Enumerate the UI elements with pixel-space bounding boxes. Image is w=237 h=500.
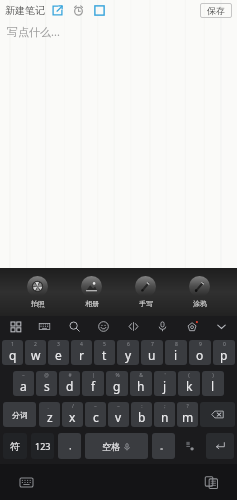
staticText: 3	[57, 341, 60, 348]
staticText: p	[220, 347, 228, 363]
staticText: 新建笔记	[5, 4, 45, 17]
button[interactable]: ~	[85, 402, 106, 427]
staticText: g	[113, 378, 121, 394]
button[interactable]: /	[62, 402, 83, 427]
button[interactable]: :	[131, 402, 152, 427]
button[interactable]: Search	[66, 318, 83, 335]
button[interactable]: Recent apps	[202, 473, 220, 491]
staticText: i	[174, 347, 178, 363]
button[interactable]: Keyboard layout	[36, 318, 53, 335]
button[interactable]: 相册	[75, 274, 108, 310]
button[interactable]: 涂鸦	[183, 274, 216, 310]
button[interactable]: ;	[154, 402, 175, 427]
staticText: 相册	[85, 299, 99, 308]
button[interactable]: 9	[189, 340, 211, 365]
button[interactable]: '	[154, 371, 176, 396]
button[interactable]: 3	[48, 340, 69, 365]
staticText: m	[182, 409, 194, 425]
staticText: 0	[223, 341, 226, 348]
button[interactable]: 5	[94, 340, 115, 365]
staticText: /	[72, 403, 74, 410]
staticText: t	[102, 347, 107, 363]
button[interactable]: ，	[58, 433, 81, 459]
button[interactable]: ~	[108, 402, 129, 427]
button[interactable]: 6	[117, 340, 139, 365]
button[interactable]: )	[202, 371, 224, 396]
button[interactable]: 手写	[129, 274, 162, 310]
staticText: x	[69, 409, 76, 425]
staticText: o	[196, 347, 204, 363]
staticText: ~	[94, 403, 97, 410]
button[interactable]: Settings	[184, 318, 201, 335]
button[interactable]: Reminder	[72, 4, 85, 17]
button[interactable]: |	[82, 371, 104, 396]
button[interactable]: 7	[141, 340, 163, 365]
button[interactable]: Clipboard	[125, 318, 142, 335]
staticText: h	[137, 378, 145, 394]
staticText: 涂鸦	[193, 299, 207, 308]
button[interactable]: Switch language	[179, 433, 202, 459]
staticText: (	[188, 372, 190, 379]
button[interactable]: Export	[51, 4, 64, 17]
button[interactable]: ?	[177, 402, 198, 427]
staticText: 保存	[207, 5, 225, 16]
button[interactable]: 1	[2, 340, 23, 365]
staticText: d	[66, 378, 74, 394]
staticText: %	[115, 372, 120, 379]
button[interactable]: 、	[39, 402, 60, 427]
button[interactable]: 8	[165, 340, 187, 365]
button[interactable]: Checklist	[93, 4, 106, 17]
button[interactable]: ~	[13, 371, 34, 396]
staticText: 7	[151, 341, 154, 348]
button[interactable]: &	[130, 371, 152, 396]
button[interactable]: %	[106, 371, 128, 396]
button[interactable]: 0	[213, 340, 235, 365]
staticText: b	[138, 409, 146, 425]
staticText: f	[91, 378, 96, 394]
button[interactable]: Emoji	[95, 318, 112, 335]
button[interactable]: 符	[3, 433, 27, 459]
staticText: 8	[175, 341, 178, 348]
button[interactable]: 拍照	[21, 274, 54, 310]
button[interactable]: Backspace	[200, 402, 235, 427]
staticText: s	[44, 378, 50, 394]
staticText: j	[163, 378, 167, 394]
staticText: ~	[22, 372, 25, 379]
button[interactable]: Voice input	[154, 318, 171, 335]
staticText: z	[47, 409, 53, 425]
staticText: k	[186, 378, 193, 394]
staticText: 写点什么...	[7, 24, 60, 39]
staticText: 。	[160, 441, 168, 451]
button[interactable]: Keyboard	[17, 473, 35, 491]
button[interactable]: @	[36, 371, 57, 396]
button[interactable]: 空格	[85, 433, 148, 459]
staticText: 分词	[12, 410, 28, 420]
button[interactable]: 2	[25, 340, 46, 365]
staticText: |	[92, 372, 95, 379]
staticText: 2	[34, 341, 37, 348]
staticText: 符	[10, 440, 20, 453]
staticText: ，	[66, 441, 74, 451]
staticText: 123	[35, 440, 51, 452]
staticText: l	[211, 378, 215, 394]
staticText: 手写	[139, 299, 153, 308]
button[interactable]: Hide keyboard	[213, 318, 230, 335]
button[interactable]: Enter	[206, 433, 234, 459]
button[interactable]: 123	[31, 433, 54, 459]
button[interactable]: 分词	[3, 402, 36, 427]
button[interactable]: (	[178, 371, 200, 396]
button[interactable]: #	[59, 371, 80, 396]
staticText: 9	[199, 341, 202, 348]
staticText: a	[20, 378, 27, 394]
button[interactable]: 4	[71, 340, 92, 365]
staticText: ~	[117, 403, 120, 410]
staticText: :	[141, 403, 143, 410]
staticText: 拍照	[31, 299, 45, 308]
staticText: #	[68, 372, 72, 379]
button[interactable]: 保存	[200, 3, 232, 18]
button[interactable]: Apps	[7, 318, 24, 335]
staticText: c	[93, 409, 99, 425]
staticText: ?	[186, 403, 189, 410]
staticText: r	[79, 347, 84, 363]
button[interactable]: 。	[152, 433, 175, 459]
